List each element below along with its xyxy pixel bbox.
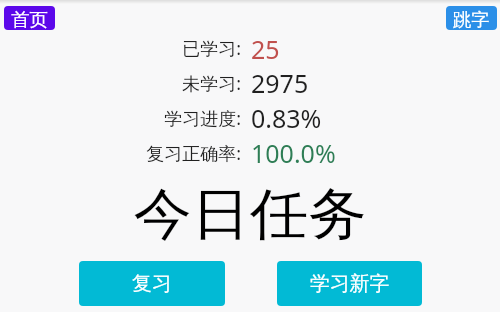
staticText: 学习新字 (310, 271, 390, 296)
staticText: 跳字 (453, 8, 490, 30)
staticText: 复习 (132, 271, 172, 296)
staticText: 今日任务 (133, 180, 366, 250)
staticText: 25 (251, 32, 280, 66)
staticText: 学习进度: (0, 106, 241, 131)
button[interactable]: 学习新字 (277, 261, 422, 306)
staticText: 复习正确率: (0, 141, 241, 166)
staticText: 首页 (11, 8, 48, 30)
staticText: 未学习: (0, 71, 241, 96)
button[interactable]: 首页 (4, 6, 55, 30)
staticText: 0.83% (251, 101, 322, 135)
staticText: 2975 (251, 66, 309, 100)
button[interactable]: 复习 (79, 261, 225, 306)
staticText: 已学习: (0, 36, 241, 61)
button[interactable]: 跳字 (446, 6, 497, 30)
staticText: 100.0% (251, 136, 336, 170)
